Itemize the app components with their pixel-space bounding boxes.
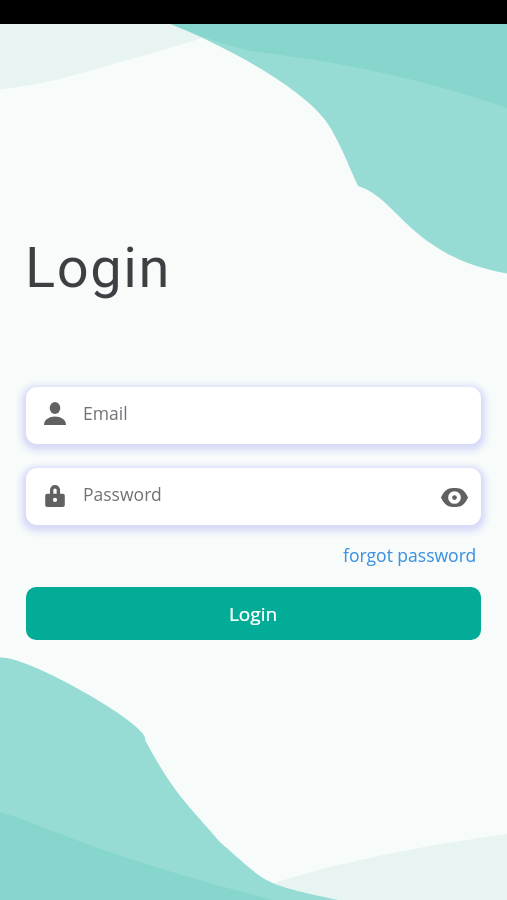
button[interactable]: Email [26,387,481,444]
button[interactable]: Login [26,587,481,640]
button[interactable]: Password [26,468,481,525]
staticText: Login [229,601,278,627]
staticText: Login [25,235,171,301]
staticText: Password [83,482,162,506]
button[interactable]: forgot password [339,539,481,571]
button[interactable]: Show password [436,482,472,512]
staticText: Email [83,401,128,425]
other: Password [44,485,66,507]
other: Email [44,402,66,425]
